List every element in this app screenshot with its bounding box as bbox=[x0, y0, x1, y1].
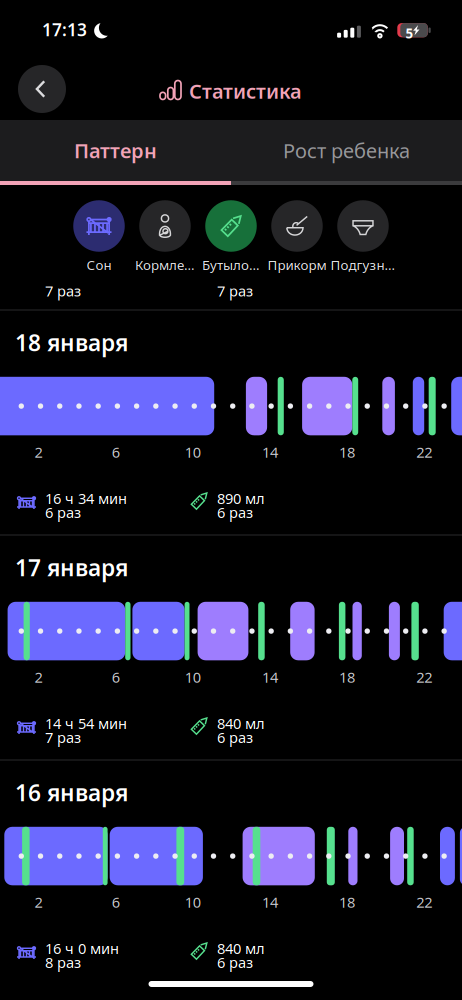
staticText: 7 раз bbox=[45, 727, 81, 747]
button[interactable]: Бутыло… bbox=[198, 200, 264, 272]
staticText: 7 раз bbox=[45, 281, 81, 300]
button[interactable]: Сон bbox=[66, 200, 132, 272]
staticText: Бутыло… bbox=[202, 256, 260, 274]
staticText: 6 раз bbox=[45, 502, 81, 522]
staticText: 22 bbox=[416, 892, 432, 912]
staticText: 10 bbox=[185, 442, 201, 462]
staticText: 16 января bbox=[15, 777, 128, 808]
staticText: 16 ч 34 мин bbox=[45, 488, 127, 508]
button[interactable]: Подгузн… bbox=[330, 200, 396, 272]
staticText: 14 bbox=[262, 442, 278, 462]
staticText: Паттерн bbox=[74, 137, 157, 164]
button[interactable]: Прикорм bbox=[264, 200, 330, 272]
staticText: 22 bbox=[416, 667, 432, 687]
staticText: 6 bbox=[112, 892, 120, 912]
staticText: 16 ч 0 мин bbox=[45, 938, 119, 958]
staticText: Прикорм bbox=[267, 256, 326, 274]
staticText: 10 bbox=[185, 667, 201, 687]
staticText: 840 мл bbox=[217, 938, 265, 958]
staticText: 10 bbox=[185, 892, 201, 912]
button[interactable]: Рост ребенка bbox=[231, 120, 462, 181]
staticText: 18 bbox=[339, 667, 355, 687]
staticText: 6 bbox=[112, 442, 120, 462]
button[interactable]: Статистика bbox=[160, 78, 302, 104]
staticText: 17 января bbox=[15, 552, 128, 583]
staticText: Сон bbox=[86, 256, 111, 274]
staticText: 6 раз bbox=[217, 502, 253, 522]
staticText: Подгузн… bbox=[330, 256, 395, 274]
staticText: 14 ч 54 мин bbox=[45, 713, 127, 733]
staticText: 6 раз bbox=[217, 727, 253, 747]
button[interactable]: Назад bbox=[18, 65, 66, 113]
button[interactable]: Паттерн bbox=[0, 120, 231, 181]
staticText: 840 мл bbox=[217, 713, 265, 733]
staticText: 18 bbox=[339, 892, 355, 912]
staticText: Рост ребенка bbox=[283, 137, 410, 164]
staticText: Статистика bbox=[189, 78, 302, 104]
staticText: 18 января bbox=[15, 327, 128, 358]
staticText: 18 bbox=[339, 442, 355, 462]
staticText: 2 bbox=[35, 667, 43, 687]
staticText: 2 bbox=[35, 442, 43, 462]
staticText: 5 bbox=[405, 24, 413, 42]
staticText: 890 мл bbox=[217, 488, 265, 508]
staticText: 7 раз bbox=[217, 281, 253, 300]
staticText: 8 раз bbox=[45, 952, 81, 972]
staticText: Кормле… bbox=[135, 256, 195, 274]
staticText: 6 раз bbox=[217, 952, 253, 972]
button[interactable]: Кормле… bbox=[132, 200, 198, 272]
staticText: 14 bbox=[262, 892, 278, 912]
staticText: 14 bbox=[262, 667, 278, 687]
staticText: 2 bbox=[35, 892, 43, 912]
staticText: 22 bbox=[416, 442, 432, 462]
staticText: 17:13 bbox=[42, 18, 87, 41]
staticText: 6 bbox=[112, 667, 120, 687]
